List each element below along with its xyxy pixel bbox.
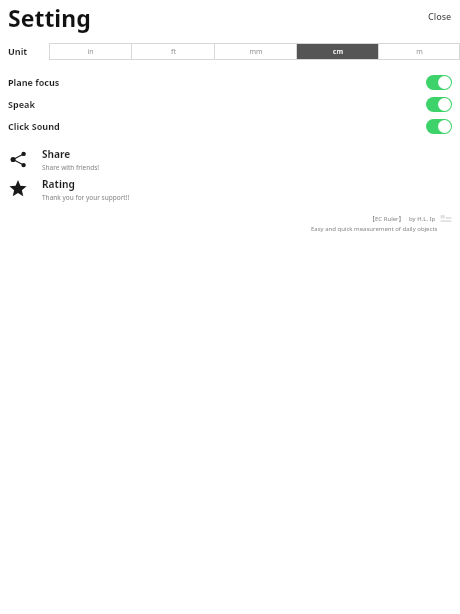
staticText: Share with friends!	[42, 163, 100, 172]
staticText: Thank you for your support!!	[42, 193, 130, 202]
staticText: cm	[333, 47, 343, 57]
staticText: m	[416, 47, 423, 57]
staticText: Close	[428, 10, 452, 22]
staticText: Setting	[8, 2, 91, 33]
staticText: ft	[171, 47, 176, 57]
other: Share	[10, 151, 27, 168]
staticText: Unit	[8, 45, 28, 57]
button[interactable]: Plane focus	[0, 71, 460, 93]
staticText: Easy and quick measurement of daily obje…	[311, 225, 438, 233]
staticText: Share	[42, 147, 71, 161]
staticText: 【EC Ruler】	[369, 215, 405, 223]
staticText: by H.L. Ip	[409, 215, 436, 223]
button[interactable]: Rating	[0, 174, 460, 204]
staticText: Rating	[42, 177, 75, 191]
button[interactable]: Toggle on	[426, 75, 452, 90]
button[interactable]: m	[379, 43, 460, 60]
button[interactable]: Toggle on	[426, 97, 452, 112]
staticText: mm	[249, 47, 263, 57]
staticText: Plane focus	[8, 76, 60, 88]
staticText: Click Sound	[8, 120, 60, 132]
other: Rating	[9, 180, 27, 198]
staticText: Speak	[8, 98, 35, 110]
button[interactable]: Speak	[0, 93, 460, 115]
button[interactable]: in	[49, 43, 131, 60]
button[interactable]: ft	[132, 43, 214, 60]
button[interactable]: Share	[0, 144, 460, 174]
button[interactable]: Click Sound	[0, 115, 460, 137]
button[interactable]: cm	[297, 43, 378, 60]
button[interactable]: mm	[215, 43, 296, 60]
button[interactable]: Close	[420, 8, 460, 24]
button[interactable]: Toggle on	[426, 119, 452, 134]
staticText: in	[87, 47, 94, 57]
